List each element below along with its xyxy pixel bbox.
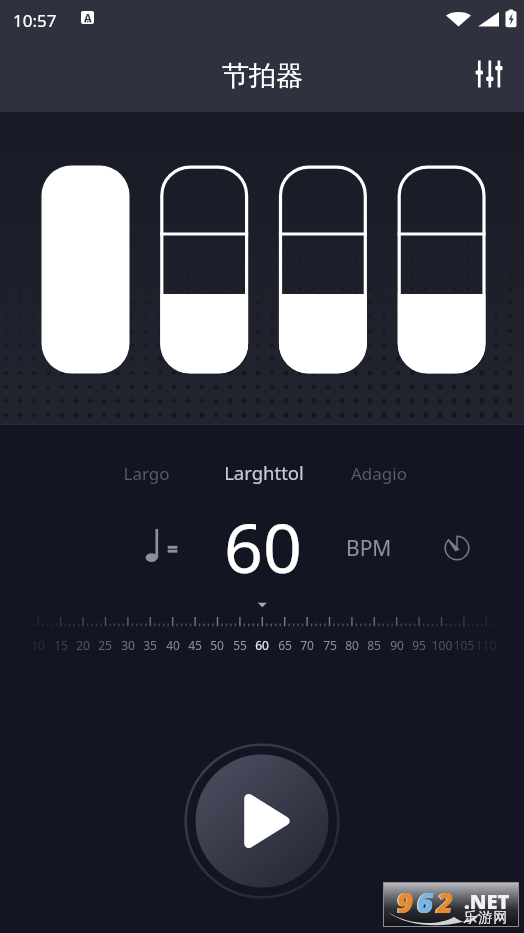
- staticText: 80: [338, 637, 366, 653]
- staticText: 70: [293, 637, 321, 653]
- staticText: 50: [203, 637, 231, 653]
- staticText: 6: [416, 882, 433, 921]
- staticText: 60: [248, 637, 276, 653]
- staticText: 40: [159, 637, 187, 653]
- staticText: 100: [428, 637, 456, 653]
- button[interactable]: Adagio: [314, 456, 444, 490]
- staticText: 110: [472, 637, 500, 653]
- staticText: 6: [417, 883, 434, 921]
- staticText: BPM: [346, 534, 392, 563]
- staticText: 10: [24, 637, 52, 653]
- staticText: 45: [181, 637, 209, 653]
- staticText: 85: [360, 637, 388, 653]
- staticText: Largo: [123, 462, 170, 485]
- button[interactable]: Play: [180, 739, 344, 903]
- staticText: 60: [224, 500, 302, 593]
- staticText: 15: [47, 637, 75, 653]
- staticText: 55: [226, 637, 254, 653]
- staticText: 25: [91, 637, 119, 653]
- staticText: 90: [383, 637, 411, 653]
- staticText: Larghttol: [224, 460, 304, 485]
- staticText: 9: [397, 883, 414, 921]
- staticText: 75: [316, 637, 344, 653]
- staticText: 35: [136, 637, 164, 653]
- button[interactable]: Timer: [437, 528, 477, 568]
- button[interactable]: Larghttol: [199, 455, 329, 489]
- button[interactable]: 5: [0, 598, 524, 658]
- staticText: Adagio: [351, 462, 407, 485]
- staticText: A: [84, 11, 92, 23]
- staticText: 2: [436, 882, 453, 921]
- staticText: 乐游网: [463, 909, 509, 927]
- button[interactable]: Settings: [465, 50, 513, 98]
- staticText: 10:57: [13, 9, 57, 32]
- staticText: 节拍器: [222, 59, 303, 93]
- staticText: 2: [437, 883, 454, 921]
- staticText: .NET: [464, 888, 510, 915]
- staticText: 9: [396, 882, 413, 921]
- staticText: 20: [69, 637, 97, 653]
- staticText: 105: [450, 637, 478, 653]
- staticText: 30: [114, 637, 142, 653]
- staticText: 95: [405, 637, 433, 653]
- staticText: 65: [271, 637, 299, 653]
- button[interactable]: Largo: [81, 456, 211, 490]
